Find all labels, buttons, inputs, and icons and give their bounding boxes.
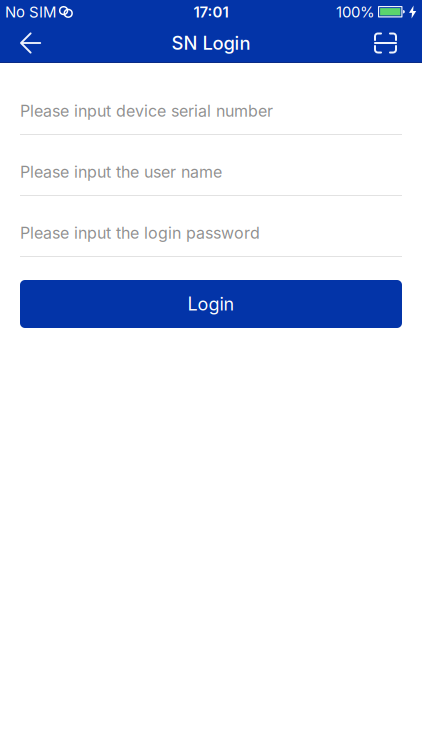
staticText: Please input the user name: [20, 162, 222, 182]
staticText: Please input device serial number: [20, 101, 273, 121]
button[interactable]: Scan: [374, 23, 422, 62]
button[interactable]: Back: [0, 23, 41, 62]
staticText: SN Login: [171, 32, 250, 54]
staticText: 17:01: [193, 3, 228, 21]
staticText: 100%: [336, 3, 375, 21]
staticText: Please input the login password: [20, 223, 260, 243]
button[interactable]: Login: [20, 280, 402, 328]
staticText: Login: [187, 293, 234, 315]
staticText: No SIM: [5, 3, 56, 21]
